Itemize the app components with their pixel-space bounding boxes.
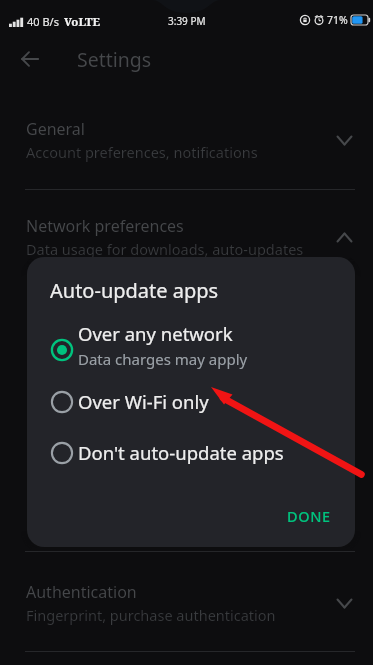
staticText: Network preferences — [26, 215, 184, 237]
staticText: Fingerprint, purchase authentication — [26, 605, 276, 625]
button[interactable]: General — [0, 116, 373, 172]
staticText: DONE — [287, 506, 331, 526]
button[interactable]: Over Wi-Fi only — [27, 376, 355, 427]
staticText: VoLTE — [64, 14, 101, 27]
staticText: 71% — [327, 13, 348, 27]
button[interactable]: Authentication — [0, 579, 373, 635]
staticText: Over Wi-Fi only — [78, 389, 209, 414]
staticText: Don't auto-update apps — [78, 440, 284, 465]
staticText: Settings — [77, 46, 152, 73]
staticText: Authentication — [26, 581, 137, 603]
staticText: Data charges may apply — [78, 349, 248, 369]
button[interactable]: Network preferences — [0, 213, 373, 269]
staticText: Auto-update apps — [50, 277, 219, 304]
button[interactable]: Over any network — [27, 317, 355, 373]
staticText: 40 B/s — [27, 14, 59, 27]
button[interactable]: Don't auto-update apps — [27, 427, 355, 478]
staticText: Data usage for downloads, auto-updates — [26, 239, 304, 259]
staticText: Over any network — [78, 321, 233, 346]
staticText: Account preferences, notifications — [26, 142, 258, 162]
staticText: General — [26, 118, 85, 140]
button[interactable]: Back — [9, 38, 51, 80]
button[interactable]: DONE — [275, 498, 343, 534]
staticText: 3:39 PM — [168, 14, 206, 28]
